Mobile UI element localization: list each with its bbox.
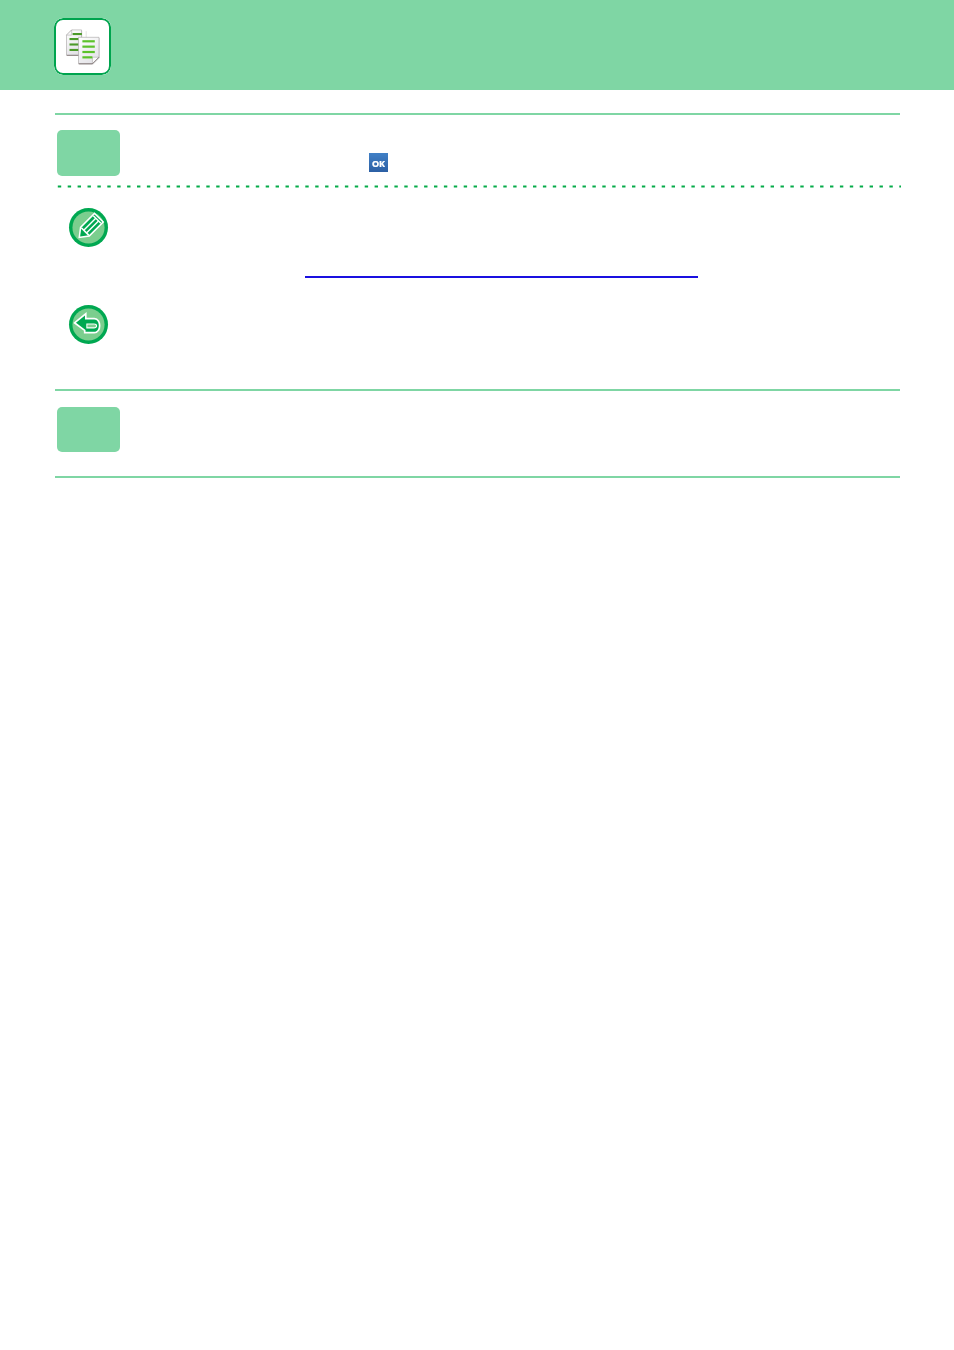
staticText: OK (372, 157, 386, 169)
button[interactable]: Note (69, 208, 108, 247)
button[interactable]: OK (369, 153, 388, 172)
button[interactable]: Copy (54, 18, 111, 75)
button[interactable]: Cancel (69, 305, 108, 344)
